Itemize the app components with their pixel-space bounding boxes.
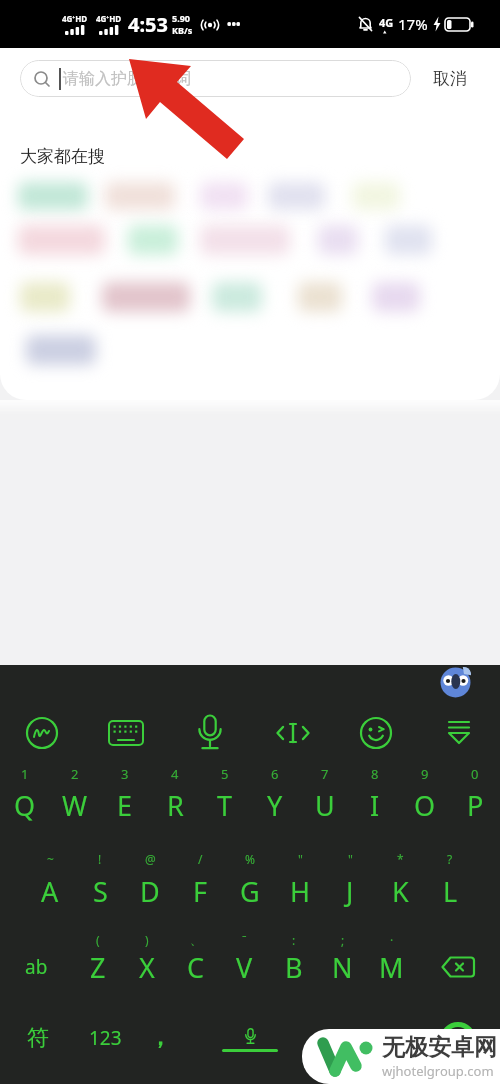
- button[interactable]: D: [125, 873, 175, 910]
- staticText: ": [298, 851, 303, 867]
- button[interactable]: M: [367, 946, 416, 988]
- button[interactable]: 符: [0, 1013, 76, 1063]
- staticText: @: [145, 851, 156, 867]
- button[interactable]: ?: [425, 851, 475, 867]
- button[interactable]: 1: [0, 765, 50, 783]
- button[interactable]: 2: [50, 765, 100, 783]
- button[interactable]: X: [122, 946, 171, 988]
- button[interactable]: K: [375, 873, 425, 910]
- button[interactable]: 、: [171, 932, 220, 947]
- button[interactable]: [84, 705, 168, 760]
- button[interactable]: [26, 335, 96, 365]
- button[interactable]: S: [75, 873, 125, 910]
- button[interactable]: [385, 225, 432, 255]
- staticText: X: [139, 949, 155, 986]
- button[interactable]: [318, 225, 358, 255]
- button[interactable]: [372, 282, 420, 312]
- button[interactable]: ~: [25, 851, 75, 867]
- button[interactable]: [212, 282, 262, 312]
- button[interactable]: ;: [318, 932, 367, 948]
- button[interactable]: ˉ: [220, 932, 269, 948]
- button[interactable]: 取消: [433, 68, 467, 89]
- button[interactable]: :: [269, 932, 318, 948]
- button[interactable]: ，: [134, 1013, 186, 1063]
- button[interactable]: [200, 225, 290, 255]
- button[interactable]: 0: [450, 765, 500, 783]
- button[interactable]: *: [375, 851, 425, 867]
- button[interactable]: 请输入护肤关键词: [20, 60, 411, 97]
- button[interactable]: Z: [73, 946, 122, 988]
- button[interactable]: ): [122, 932, 171, 948]
- button[interactable]: [416, 946, 500, 988]
- button[interactable]: 5: [200, 765, 250, 783]
- button[interactable]: [20, 282, 70, 312]
- button[interactable]: Y: [250, 787, 300, 824]
- button[interactable]: [186, 1013, 314, 1063]
- button[interactable]: @: [125, 851, 175, 867]
- button[interactable]: [128, 225, 178, 255]
- button[interactable]: 7: [300, 765, 350, 783]
- staticText: 无极安卓网: [382, 1033, 497, 1062]
- button[interactable]: ab: [0, 946, 73, 988]
- staticText: F: [193, 873, 208, 910]
- button[interactable]: %: [225, 851, 275, 867]
- button[interactable]: C: [171, 946, 220, 988]
- button[interactable]: N: [318, 946, 367, 988]
- button[interactable]: [334, 705, 417, 760]
- button[interactable]: [105, 182, 175, 210]
- button[interactable]: G: [225, 873, 275, 910]
- button[interactable]: V: [220, 946, 269, 988]
- button[interactable]: W: [50, 787, 100, 824]
- staticText: !: [98, 851, 102, 867]
- staticText: 请输入护肤关键词: [63, 69, 191, 89]
- button[interactable]: H: [275, 873, 325, 910]
- staticText: L: [443, 873, 458, 910]
- button[interactable]: !: [75, 851, 125, 867]
- button[interactable]: [18, 225, 105, 255]
- button[interactable]: U: [300, 787, 350, 824]
- staticText: ": [348, 851, 353, 867]
- button[interactable]: [200, 182, 248, 210]
- button[interactable]: Q: [0, 787, 50, 824]
- button[interactable]: B: [269, 946, 318, 988]
- staticText: I: [370, 787, 380, 824]
- button[interactable]: [251, 705, 334, 760]
- staticText: /: [198, 851, 203, 867]
- button[interactable]: ": [325, 851, 375, 867]
- button[interactable]: 6: [250, 765, 300, 783]
- staticText: ~: [47, 851, 54, 867]
- button[interactable]: I: [350, 787, 400, 824]
- button[interactable]: [352, 182, 400, 210]
- button[interactable]: 3: [100, 765, 150, 783]
- button[interactable]: ·: [367, 932, 416, 948]
- button[interactable]: 8: [350, 765, 400, 783]
- button[interactable]: T: [200, 787, 250, 824]
- button[interactable]: 9: [400, 765, 450, 783]
- button[interactable]: [268, 182, 325, 210]
- button[interactable]: [168, 705, 251, 760]
- staticText: M: [379, 949, 404, 986]
- button[interactable]: (: [73, 932, 122, 948]
- button[interactable]: /: [175, 851, 225, 867]
- button[interactable]: [18, 182, 88, 210]
- button[interactable]: A: [25, 873, 75, 910]
- button[interactable]: [417, 705, 500, 760]
- staticText: 123: [89, 1025, 122, 1051]
- button[interactable]: 4: [150, 765, 200, 783]
- button[interactable]: O: [400, 787, 450, 824]
- button[interactable]: [0, 705, 84, 760]
- button[interactable]: L: [425, 873, 475, 910]
- button[interactable]: P: [450, 787, 500, 824]
- button[interactable]: R: [150, 787, 200, 824]
- button[interactable]: E: [100, 787, 150, 824]
- staticText: 7: [321, 765, 329, 783]
- button[interactable]: ": [275, 851, 325, 867]
- button[interactable]: F: [175, 873, 225, 910]
- button[interactable]: 123: [76, 1013, 134, 1063]
- button[interactable]: [298, 282, 342, 312]
- button[interactable]: 无极安卓网: [302, 1029, 500, 1084]
- staticText: 、: [190, 932, 202, 947]
- button[interactable]: [102, 282, 190, 312]
- staticText: 17%: [398, 14, 428, 34]
- button[interactable]: J: [325, 873, 375, 910]
